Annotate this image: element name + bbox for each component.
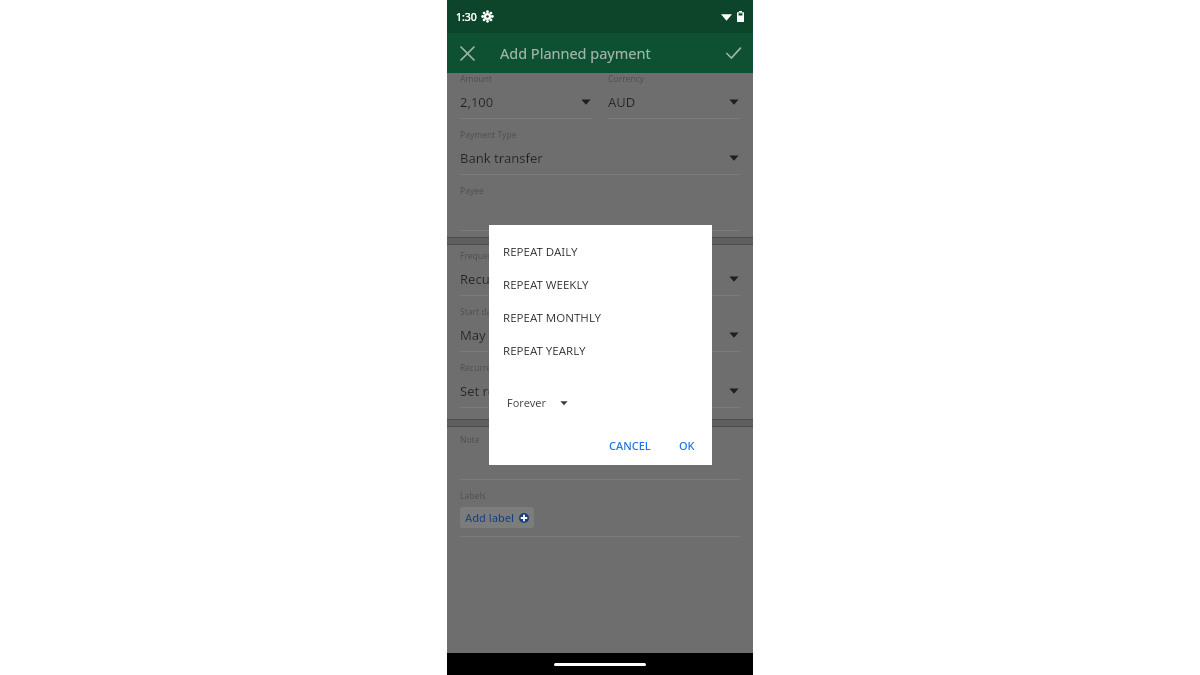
button[interactable]: Start date <box>460 306 740 352</box>
staticText: REPEAT YEARLY <box>503 343 586 359</box>
staticText: Note <box>460 434 480 446</box>
button[interactable]: Forever <box>507 395 570 410</box>
button[interactable]: Payment Type <box>460 129 740 175</box>
staticText: Start date <box>460 306 500 318</box>
staticText: OK <box>679 438 695 453</box>
staticText: 1:30 <box>456 10 477 24</box>
button[interactable]: Amount <box>460 73 592 119</box>
staticText: REPEAT DAILY <box>503 244 578 260</box>
button[interactable]: Note <box>460 434 740 480</box>
staticText: Bank transfer <box>460 149 728 167</box>
staticText: Currency <box>608 73 644 85</box>
staticText: Frequency <box>460 250 502 262</box>
staticText: Forever <box>507 395 547 410</box>
staticText: REPEAT MONTHLY <box>503 310 602 326</box>
staticText: 2,100 <box>460 93 580 111</box>
button[interactable]: Close <box>447 33 487 73</box>
button[interactable]: Payee <box>460 185 740 231</box>
staticText <box>460 454 740 472</box>
button[interactable]: Save <box>713 33 753 73</box>
staticText: REPEAT WEEKLY <box>503 277 589 293</box>
button[interactable]: Currency <box>608 73 740 119</box>
button[interactable]: Frequency <box>460 250 740 296</box>
button[interactable]: REPEAT WEEKLY <box>490 268 697 301</box>
staticText: Set recurrence <box>460 382 728 400</box>
staticText: May 1, 2025 <box>460 326 728 344</box>
staticText: CANCEL <box>609 438 651 453</box>
button[interactable]: OK <box>672 433 702 458</box>
staticText: Add Planned payment <box>500 43 713 63</box>
button[interactable]: Recurrence <box>460 362 740 408</box>
staticText: AUD <box>608 93 728 111</box>
button[interactable]: REPEAT DAILY <box>490 235 697 268</box>
staticText: Recurring <box>460 270 728 288</box>
button[interactable]: REPEAT YEARLY <box>490 334 697 367</box>
staticText: Labels <box>460 490 486 502</box>
staticText: Add label <box>465 510 515 525</box>
staticText: Recurrence <box>460 362 506 374</box>
button[interactable]: Add label <box>460 507 534 528</box>
button[interactable]: CANCEL <box>602 433 658 458</box>
staticText: Payee <box>460 185 484 197</box>
staticText: Payment Type <box>460 129 517 141</box>
button[interactable]: REPEAT MONTHLY <box>490 301 697 334</box>
staticText: Amount <box>460 73 493 85</box>
